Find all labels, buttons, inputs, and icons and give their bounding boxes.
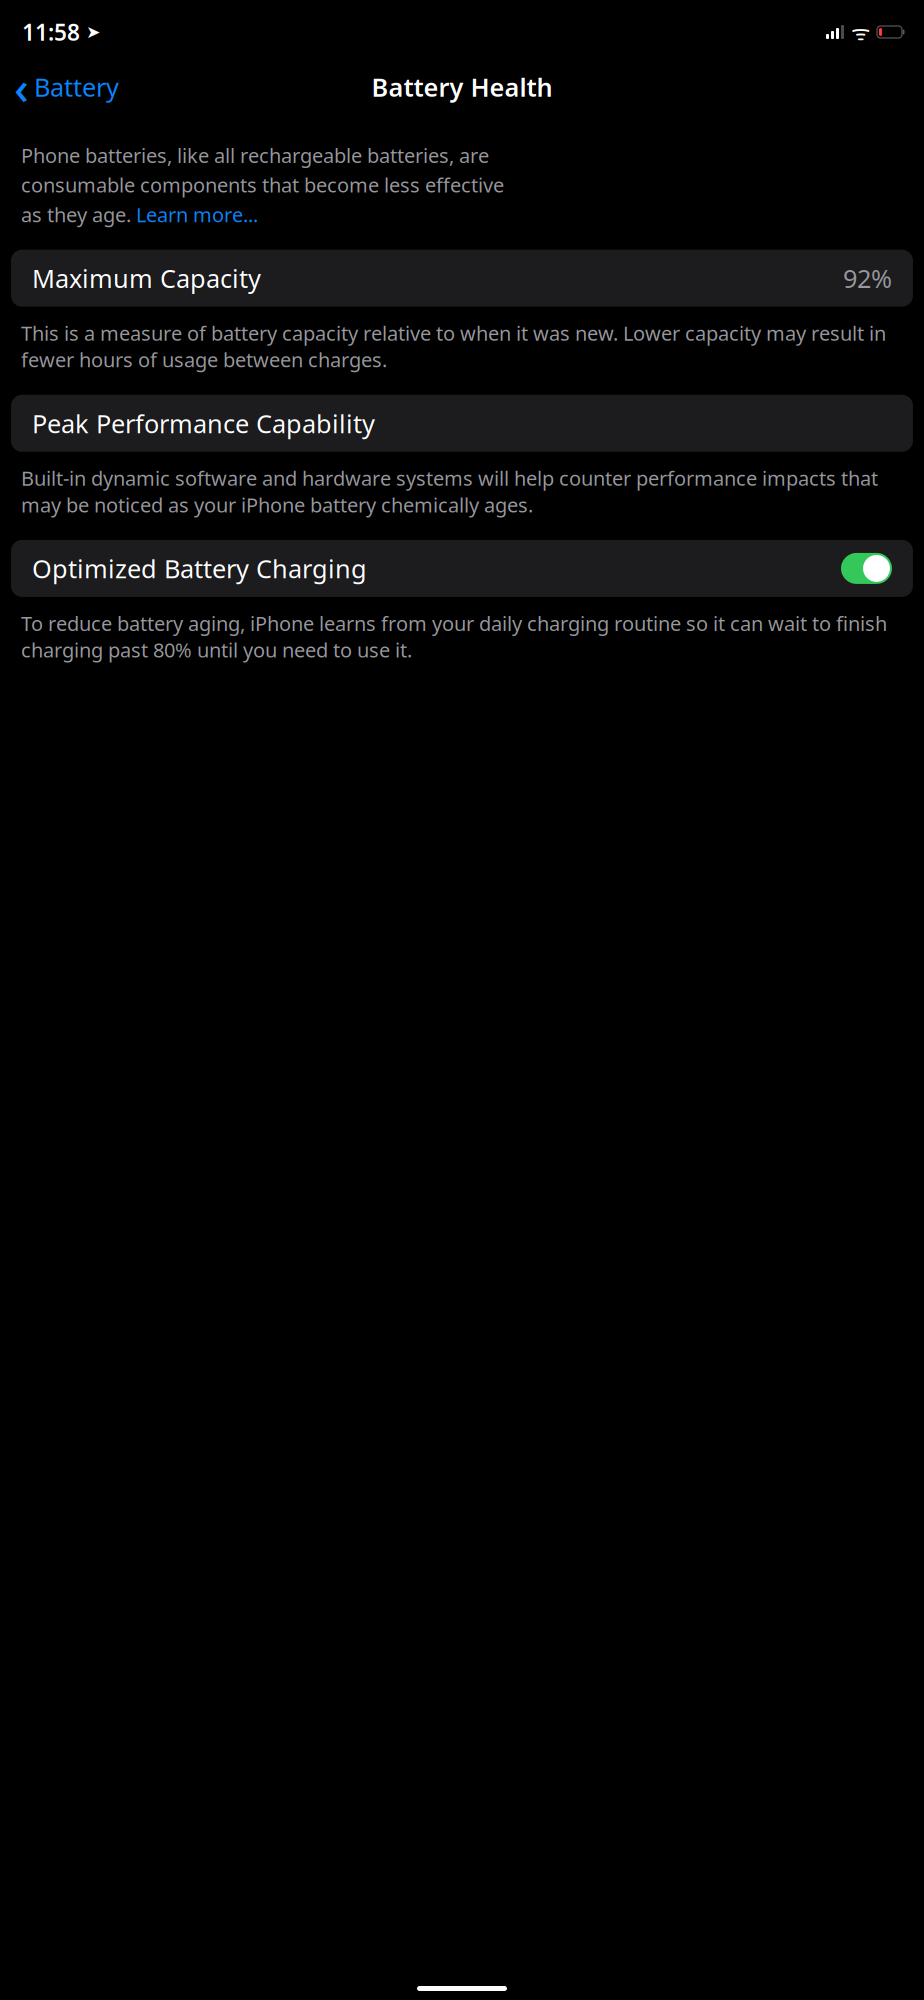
staticText: 11:58 — [22, 17, 80, 47]
staticText: Battery Health — [371, 70, 552, 104]
staticText: This is a measure of battery capacity re… — [21, 320, 886, 373]
button[interactable]: as they age. — [21, 201, 258, 228]
staticText: Optimized Battery Charging — [32, 552, 367, 585]
staticText: Built-in dynamic software and hardware s… — [21, 465, 878, 518]
staticText: as they age. — [21, 201, 136, 228]
button[interactable]: ‹ — [14, 53, 119, 121]
staticText: Maximum Capacity — [32, 261, 261, 295]
button[interactable]: Peak Performance Capability — [11, 395, 913, 452]
staticText: Learn more... — [136, 201, 258, 228]
staticText: ‹ — [14, 57, 29, 117]
staticText: ➤ — [80, 22, 101, 42]
staticText: To reduce battery aging, iPhone learns f… — [21, 610, 887, 663]
button[interactable]: Optimized Battery Charging — [11, 540, 913, 597]
staticText: Peak Performance Capability — [32, 406, 375, 440]
staticText: Battery — [34, 70, 119, 104]
staticText: ᯤ — [851, 18, 870, 46]
button[interactable]: Maximum Capacity — [11, 250, 913, 307]
staticText: 92% — [843, 261, 892, 295]
staticText: Phone batteries, like all rechargeable b… — [21, 142, 489, 169]
staticText: consumable components that become less e… — [21, 172, 504, 198]
